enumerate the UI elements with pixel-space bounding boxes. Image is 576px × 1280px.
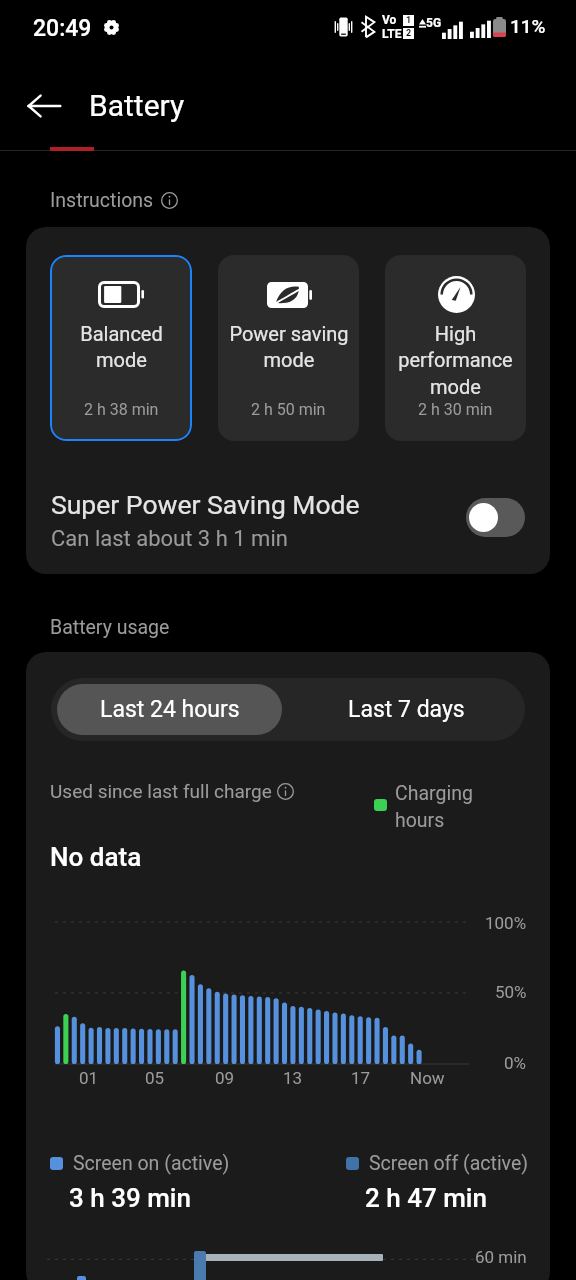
staticText: LTE xyxy=(382,27,402,41)
staticText: 13 xyxy=(283,1068,303,1088)
staticText: No data xyxy=(50,842,142,872)
staticText: Used since last full charge xyxy=(50,780,272,802)
button[interactable]: Last 24 hours xyxy=(57,684,282,735)
staticText: Screen on (active) xyxy=(73,1152,230,1175)
staticText: 2 h 47 min xyxy=(365,1183,487,1213)
staticText: Power saving mode xyxy=(229,322,349,372)
staticText: 3 h 39 min xyxy=(69,1183,191,1213)
staticText: Balanced mode xyxy=(80,322,163,372)
staticText: Super Power Saving Mode xyxy=(51,489,360,520)
staticText: 2 h 38 min xyxy=(84,400,159,419)
staticText: 0% xyxy=(504,1053,527,1073)
staticText: Battery usage xyxy=(50,616,170,639)
staticText: 09 xyxy=(215,1068,235,1088)
staticText: 11% xyxy=(510,15,546,37)
staticText: Vo xyxy=(382,13,397,27)
staticText: 1 xyxy=(406,15,412,26)
staticText: Screen off (active) xyxy=(369,1152,529,1175)
button[interactable]: Power saving mode xyxy=(218,255,359,441)
staticText: 2 h 30 min xyxy=(418,400,493,419)
staticText: 2 xyxy=(406,28,412,39)
staticText: 5G xyxy=(426,16,442,30)
staticText: Now xyxy=(410,1068,445,1088)
staticText: 05 xyxy=(145,1068,165,1088)
staticText: 60 min xyxy=(475,1247,527,1267)
staticText: Can last about 3 h 1 min xyxy=(51,526,288,552)
staticText: Instructions xyxy=(50,189,154,212)
staticText: High performance mode xyxy=(398,322,513,399)
staticText: 01 xyxy=(79,1068,99,1088)
staticText: 50% xyxy=(495,982,527,1002)
button[interactable]: Super Power Saving Mode xyxy=(26,467,550,574)
staticText: Last 7 days xyxy=(348,696,465,723)
staticText: 20:49 xyxy=(33,15,92,42)
staticText: 100% xyxy=(485,913,527,933)
staticText: 2 h 50 min xyxy=(251,400,326,419)
button[interactable]: Last 7 days xyxy=(288,678,525,741)
staticText: 17 xyxy=(351,1068,371,1088)
staticText: Last 24 hours xyxy=(100,696,240,723)
staticText: Battery xyxy=(89,88,185,123)
button[interactable]: Back xyxy=(20,82,68,130)
button[interactable]: High performance mode xyxy=(385,255,526,441)
button[interactable]: Balanced mode xyxy=(50,255,192,441)
staticText: Charging hours xyxy=(395,782,473,832)
